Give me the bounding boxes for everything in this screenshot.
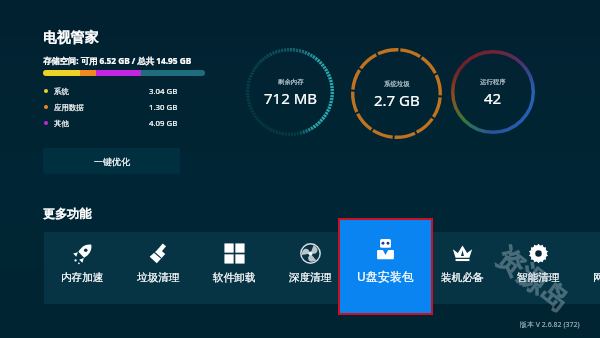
staticText: 智能清理 bbox=[517, 271, 560, 284]
button[interactable]: 智能清理 bbox=[500, 232, 576, 304]
staticText: 一键优化 bbox=[94, 156, 130, 167]
staticText: 电视管家 bbox=[43, 29, 99, 46]
staticText: 运行程序 bbox=[480, 78, 506, 86]
button[interactable]: 一键优化 bbox=[43, 148, 180, 174]
button[interactable]: 剩余内存 bbox=[246, 48, 334, 136]
button[interactable]: 网络检测 bbox=[576, 232, 600, 304]
staticText: 垃圾清理 bbox=[137, 271, 180, 284]
button[interactable]: 运行程序 bbox=[451, 50, 535, 134]
button[interactable]: 系统垃圾 bbox=[351, 48, 442, 139]
staticText: 剩余内存 bbox=[278, 78, 304, 86]
staticText: 网络检测 bbox=[593, 271, 600, 284]
staticText: 其他 bbox=[54, 119, 69, 128]
staticText: 应用数据 bbox=[54, 103, 84, 112]
staticText: 更多功能 bbox=[43, 206, 91, 221]
staticText: 深度清理 bbox=[289, 271, 332, 284]
button[interactable]: 垃圾清理 bbox=[120, 232, 196, 304]
staticText: 1.30 GB bbox=[149, 102, 178, 113]
button[interactable]: 软件卸载 bbox=[196, 232, 272, 304]
button[interactable]: 内存加速 bbox=[44, 232, 120, 304]
staticText: 2.7 GB bbox=[374, 90, 420, 110]
staticText: 3.04 GB bbox=[149, 86, 178, 97]
button[interactable]: 装机必备 bbox=[424, 232, 500, 304]
staticText: 4.09 GB bbox=[149, 118, 178, 129]
staticText: 存储空间: 可用 6.52 GB / 总共 14.95 GB bbox=[43, 55, 192, 66]
staticText: 42 bbox=[484, 88, 502, 108]
button[interactable]: 深度清理 bbox=[272, 232, 348, 304]
staticText: U盘安装包 bbox=[357, 268, 414, 284]
staticText: 系统 bbox=[54, 87, 69, 96]
staticText: 版本 V 2.6.82 (372) bbox=[520, 320, 580, 330]
staticText: 资源岛 bbox=[489, 240, 576, 319]
button[interactable]: U盘安装包 bbox=[340, 220, 431, 313]
staticText: 712 MB bbox=[264, 88, 317, 108]
staticText: 系统垃圾 bbox=[384, 80, 410, 88]
staticText: 软件卸载 bbox=[213, 271, 256, 284]
staticText: 内存加速 bbox=[61, 271, 104, 284]
staticText: 装机必备 bbox=[441, 271, 484, 284]
